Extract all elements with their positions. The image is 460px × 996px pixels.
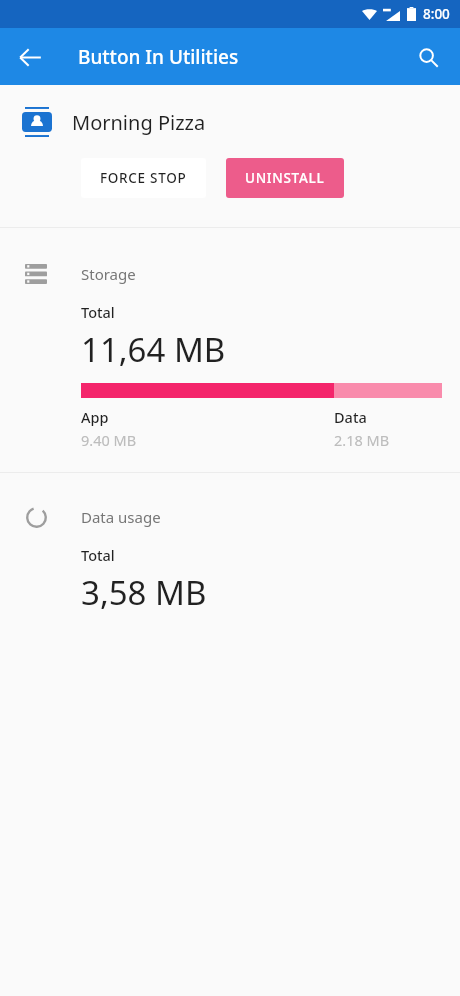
staticText: Morning Pizza xyxy=(72,109,206,136)
staticText: Data usage xyxy=(81,507,161,527)
staticText: Total xyxy=(81,545,115,565)
staticText: FORCE STOP xyxy=(100,169,187,187)
staticText: UNINSTALL xyxy=(245,169,325,187)
button[interactable]: Storage xyxy=(0,228,460,472)
button[interactable]: Search xyxy=(405,34,451,80)
staticText: 11,64 MB xyxy=(81,327,226,372)
staticText: Data xyxy=(334,407,367,427)
button[interactable]: FORCE STOP xyxy=(81,158,206,198)
staticText: Storage xyxy=(81,264,136,284)
staticText: Total xyxy=(81,302,115,322)
staticText: 8:00 xyxy=(423,5,450,23)
staticText: App xyxy=(81,407,109,427)
button[interactable]: Back xyxy=(6,33,54,81)
staticText: Button In Utilities xyxy=(78,44,239,70)
button[interactable]: Data usage xyxy=(0,473,460,639)
staticText: 9.40 MB xyxy=(81,430,137,450)
staticText: 2.18 MB xyxy=(334,430,390,450)
staticText: 3,58 MB xyxy=(81,570,207,615)
button[interactable]: UNINSTALL xyxy=(226,158,344,198)
